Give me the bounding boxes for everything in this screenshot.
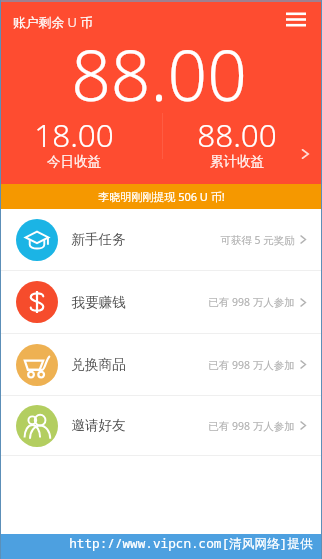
- button[interactable]: 李晓明刚刚提现 506 U 币!: [0, 184, 322, 209]
- staticText: 新手任务: [71, 231, 126, 248]
- staticText: 我要赚钱: [71, 294, 126, 311]
- button[interactable]: 88.00: [197, 113, 277, 173]
- staticText: 88.00: [71, 27, 247, 122]
- staticText: 兑换商品: [71, 356, 126, 373]
- staticText: 累计收益: [210, 153, 264, 170]
- button[interactable]: 新手任务: [0, 209, 322, 270]
- button[interactable]: View earnings detail: [294, 142, 318, 166]
- staticText: http://www.vipcn.com[清风网络]提供: [69, 534, 313, 551]
- staticText: 已有 998 万人参加: [208, 295, 295, 309]
- staticText: 已有 998 万人参加: [208, 419, 295, 433]
- button[interactable]: 邀请好友: [0, 396, 322, 455]
- button[interactable]: 兑换商品: [0, 334, 322, 395]
- staticText: 账户剩余 U 币: [13, 13, 93, 30]
- staticText: 邀请好友: [71, 417, 126, 434]
- staticText: 88.00: [197, 113, 277, 156]
- staticText: 李晓明刚刚提现 506 U 币!: [98, 189, 225, 204]
- button[interactable]: 我要赚钱: [0, 271, 322, 333]
- staticText: 已有 998 万人参加: [208, 358, 295, 372]
- staticText: 可获得 5 元奖励: [220, 233, 295, 247]
- button[interactable]: Menu: [282, 8, 310, 36]
- button[interactable]: 18.00: [34, 113, 114, 173]
- staticText: 18.00: [34, 113, 114, 156]
- staticText: 今日收益: [47, 153, 101, 170]
